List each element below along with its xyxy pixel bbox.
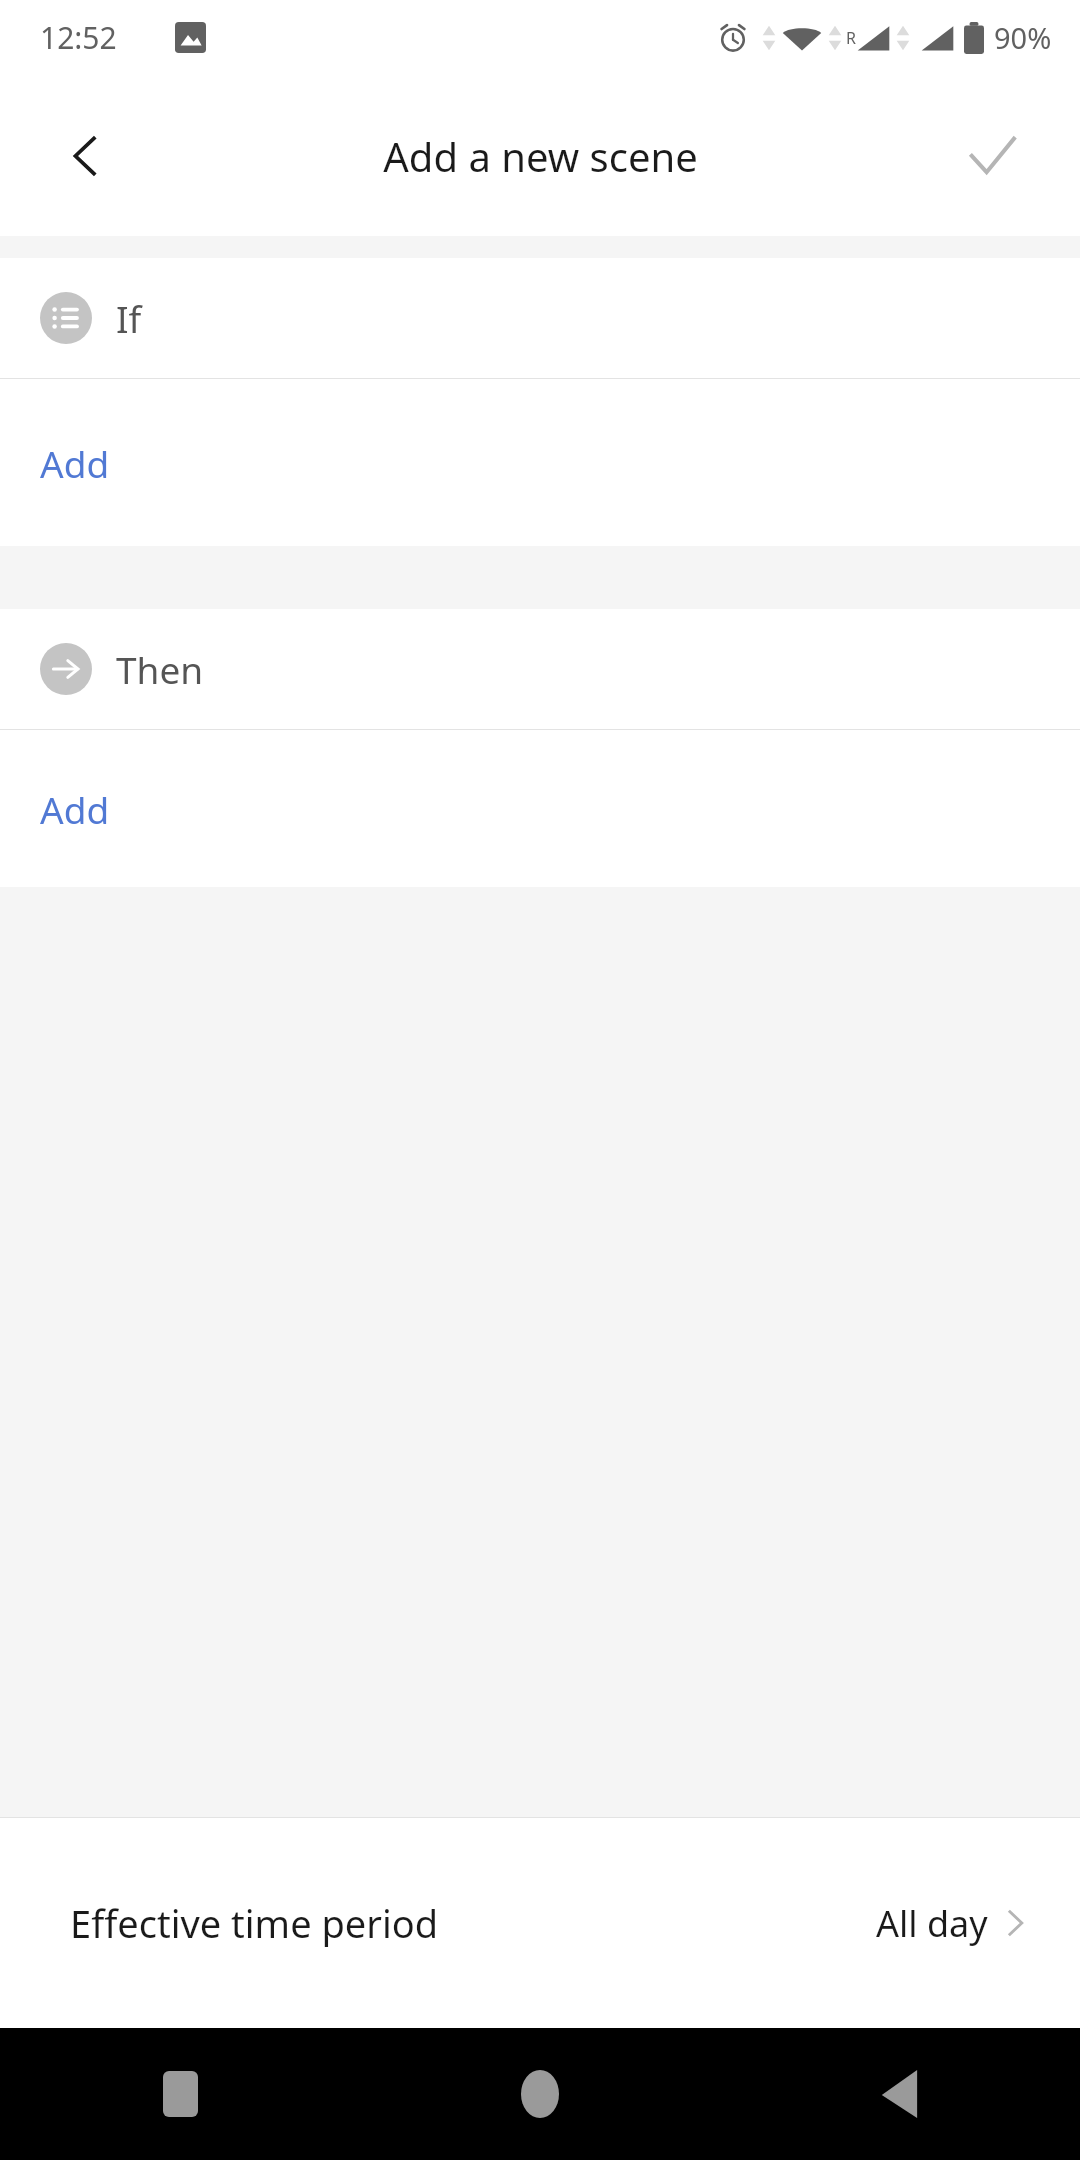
button[interactable]: Add [0,730,1080,887]
staticText: Add a new scene [383,129,698,183]
button[interactable]: Effective time period [0,1818,1080,2028]
button[interactable]: If [0,258,1080,378]
button[interactable]: Recent apps [0,2028,360,2160]
staticText: 12:52 [40,17,117,58]
staticText: Then [116,644,204,694]
button[interactable]: Back [48,118,124,194]
staticText: Add [40,784,110,834]
staticText: All day [876,1899,988,1948]
staticText: 90% [994,18,1052,57]
staticText: If [116,293,142,343]
button[interactable]: Back [720,2028,1080,2160]
staticText: Effective time period [70,1897,439,1949]
staticText: Add [40,438,110,488]
button[interactable]: Home [360,2028,720,2160]
staticText: R [846,27,856,49]
button[interactable]: Add [0,379,1080,546]
button[interactable]: Then [0,609,1080,729]
button[interactable]: Confirm [952,116,1032,196]
